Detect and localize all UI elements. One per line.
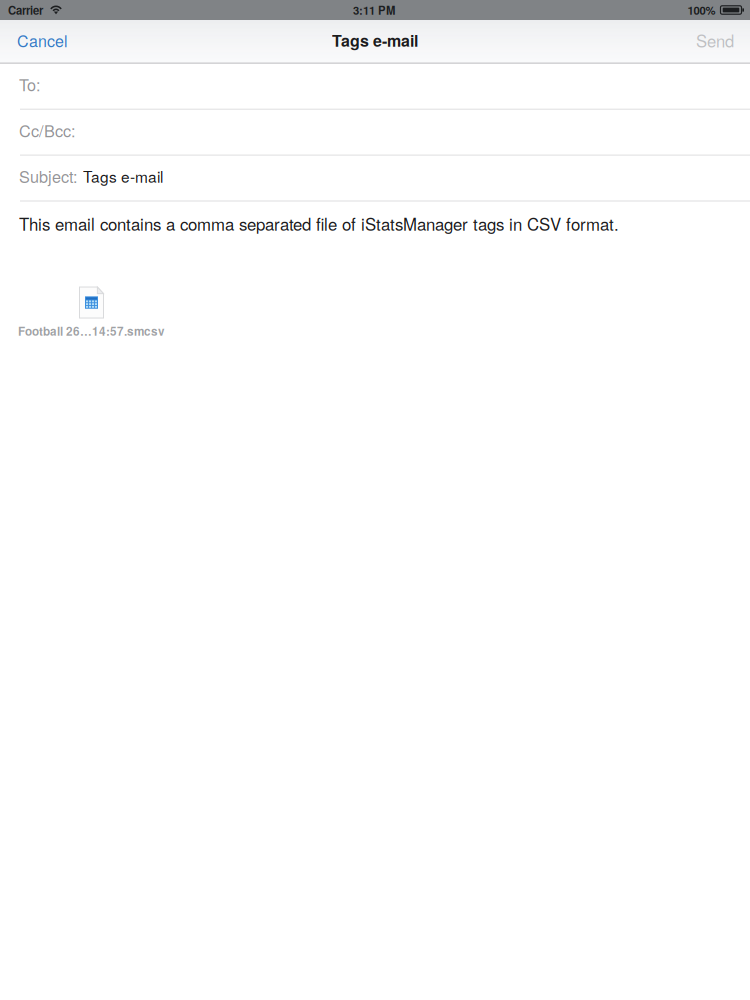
staticText: 100%: [687, 2, 715, 18]
staticText: To:: [19, 73, 41, 96]
staticText: Subject:: [19, 164, 78, 188]
staticText: 3:11 PM: [353, 2, 395, 18]
button[interactable]: To:: [0, 64, 750, 109]
staticText: Tags e-mail: [83, 165, 163, 187]
button[interactable]: Football 26…14:57.smcsv: [18, 287, 165, 339]
staticText: Carrier: [8, 2, 43, 18]
staticText: Football 26…14:57.smcsv: [18, 323, 165, 339]
staticText: This email contains a comma separated fi…: [19, 211, 619, 236]
staticText: Cancel: [17, 29, 68, 52]
button[interactable]: Send: [682, 20, 750, 62]
staticText: Tags e-mail: [332, 29, 418, 52]
staticText: Send: [696, 28, 734, 52]
button[interactable]: Subject:: [0, 156, 750, 200]
staticText: Cc/Bcc:: [19, 118, 76, 142]
button[interactable]: Cancel: [0, 20, 82, 62]
button[interactable]: Cc/Bcc:: [0, 110, 750, 155]
